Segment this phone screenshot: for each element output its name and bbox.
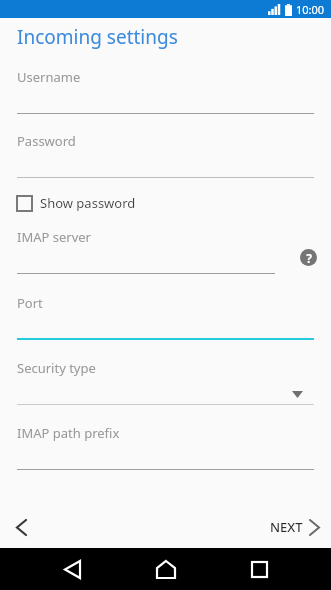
button[interactable]: Home	[144, 548, 188, 590]
staticText: Password	[17, 132, 76, 150]
button[interactable]: Port	[0, 294, 331, 340]
button[interactable]: Security type	[0, 359, 331, 405]
button[interactable]: IMAP server	[0, 228, 331, 274]
button[interactable]: Back	[6, 512, 36, 542]
staticText: 10:00	[296, 2, 325, 17]
staticText: ?	[306, 250, 312, 266]
staticText: Port	[17, 294, 43, 312]
staticText: Incoming settings	[17, 24, 178, 50]
button[interactable]: NEXT	[266, 512, 323, 542]
button[interactable]: Show password	[0, 190, 331, 216]
staticText: NEXT	[270, 518, 303, 536]
staticText: Show password	[40, 194, 136, 212]
button[interactable]: Recent apps	[237, 548, 281, 590]
button[interactable]: Back	[50, 548, 94, 590]
staticText: Security type	[17, 359, 96, 377]
button[interactable]: Password	[0, 132, 331, 178]
button[interactable]: Username	[0, 68, 331, 114]
staticText: IMAP path prefix	[17, 424, 120, 442]
staticText: Username	[17, 68, 81, 86]
staticText: IMAP server	[17, 228, 91, 246]
button[interactable]: Help	[300, 249, 317, 266]
button[interactable]: IMAP path prefix	[0, 424, 331, 470]
